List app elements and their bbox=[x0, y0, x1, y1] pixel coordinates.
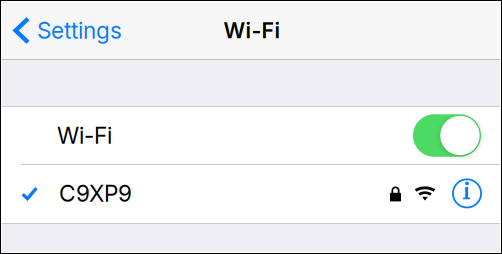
button[interactable]: Wi-Fi, on bbox=[413, 114, 481, 157]
staticText: Wi-Fi bbox=[57, 122, 112, 149]
staticText: Settings bbox=[37, 17, 122, 44]
staticText: Wi-Fi bbox=[223, 18, 280, 43]
button[interactable]: Back to Settings bbox=[2, 2, 132, 59]
staticText: C9XP9 bbox=[59, 180, 132, 207]
button[interactable]: C9XP9 bbox=[2, 165, 500, 223]
